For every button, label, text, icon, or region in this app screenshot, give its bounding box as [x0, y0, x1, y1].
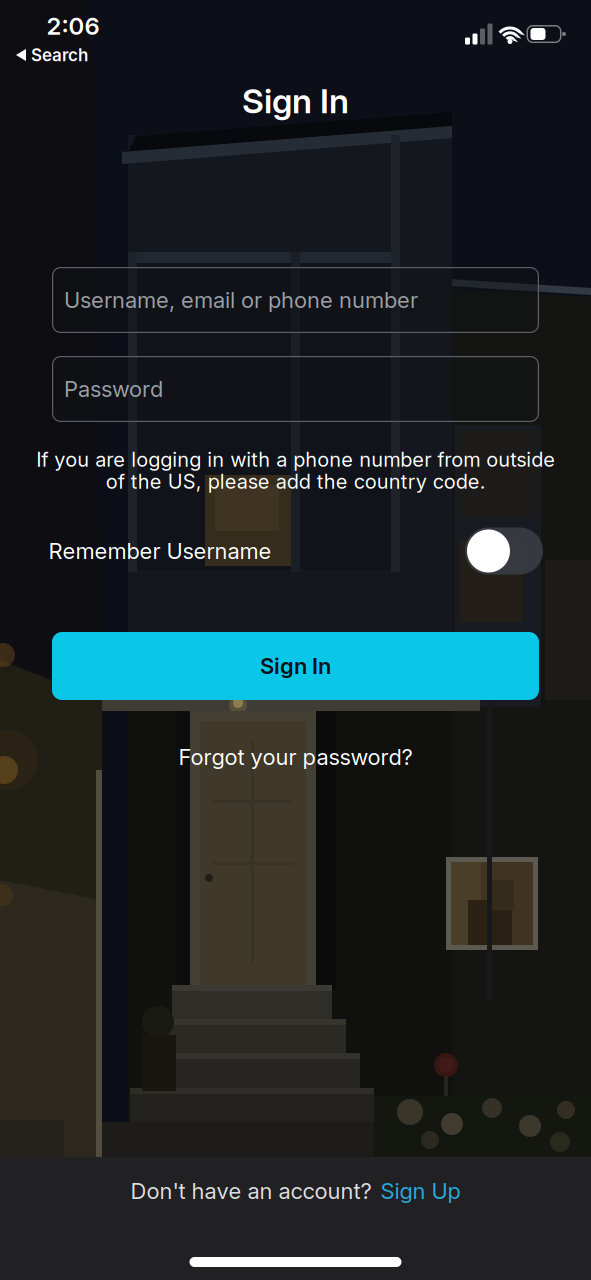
staticText: If you are logging in with a phone numbe…	[36, 448, 555, 493]
button[interactable]: Username, email or phone number	[52, 267, 539, 333]
button[interactable]: Sign Up	[380, 1178, 460, 1204]
staticText: Search	[31, 45, 88, 65]
staticText: Remember Username	[48, 538, 271, 564]
button[interactable]: Forgot your password?	[178, 744, 412, 770]
staticText: Don't have an account?	[130, 1178, 371, 1204]
staticText: Sign In	[260, 653, 331, 679]
button[interactable]: Password	[52, 356, 539, 422]
staticText: Username, email or phone number	[64, 287, 418, 313]
button[interactable]: Sign In	[52, 632, 539, 700]
staticText: Forgot your password?	[178, 744, 412, 770]
staticText: Password	[64, 376, 163, 402]
button[interactable]: Remember Username toggle	[465, 527, 543, 574]
staticText: Sign In	[242, 81, 349, 121]
staticText: 2:06	[46, 12, 99, 40]
button[interactable]: Back to Search	[16, 45, 88, 65]
staticText: Sign Up	[380, 1178, 460, 1204]
